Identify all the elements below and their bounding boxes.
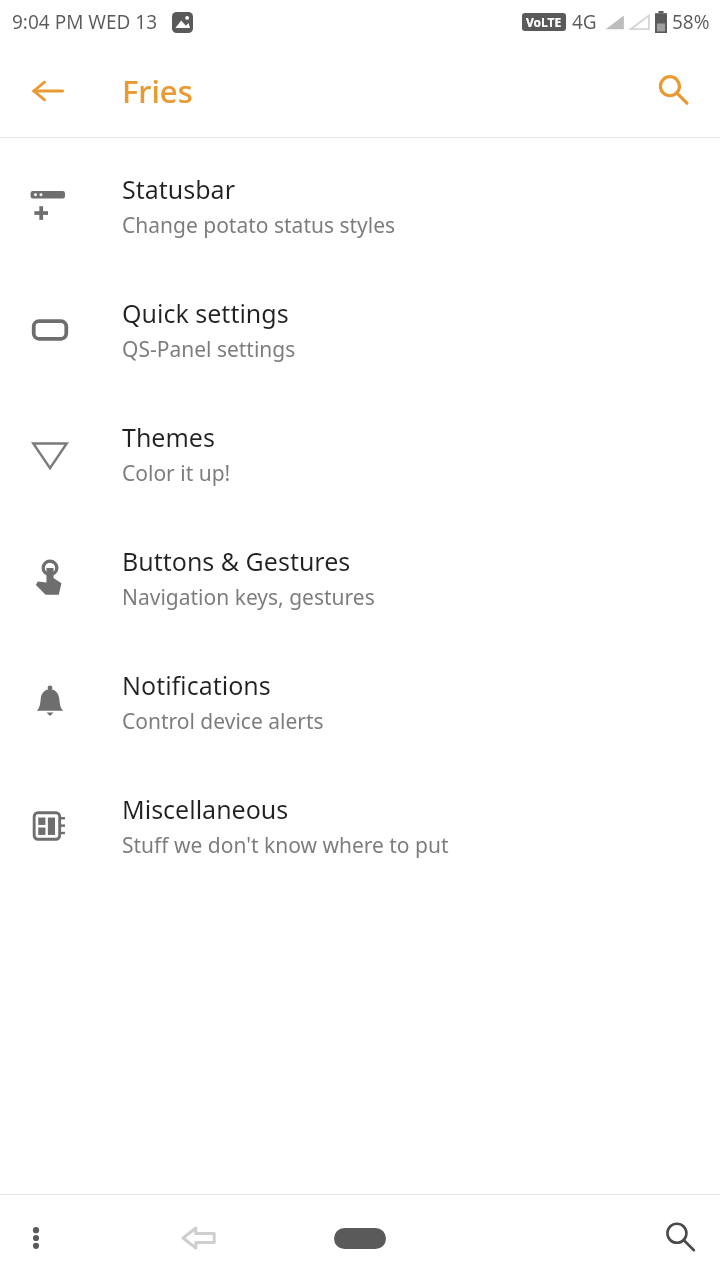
button[interactable]: Quick settings bbox=[0, 268, 720, 392]
staticText: QS-Panel settings bbox=[122, 335, 296, 364]
staticText: Statusbar bbox=[122, 172, 235, 206]
staticText: 9:04 PM WED 13 bbox=[12, 9, 158, 35]
staticText: Notifications bbox=[122, 668, 271, 702]
button[interactable]: Buttons & Gestures bbox=[0, 516, 720, 640]
staticText: Themes bbox=[122, 420, 215, 454]
staticText: Control device alerts bbox=[122, 707, 324, 736]
staticText: Change potato status styles bbox=[122, 211, 396, 240]
button[interactable]: Back bbox=[170, 1209, 228, 1267]
staticText: Miscellaneous bbox=[122, 792, 289, 826]
staticText: VoLTE bbox=[526, 14, 562, 30]
button[interactable]: Statusbar bbox=[0, 144, 720, 268]
button[interactable]: More options bbox=[8, 1210, 64, 1266]
button[interactable]: Back bbox=[16, 59, 80, 123]
staticText: Navigation keys, gestures bbox=[122, 583, 375, 612]
button[interactable]: Home bbox=[321, 1214, 399, 1262]
button[interactable]: Themes bbox=[0, 392, 720, 516]
staticText: Color it up! bbox=[122, 459, 231, 488]
staticText: 4G bbox=[572, 9, 597, 35]
button[interactable]: Search bbox=[652, 1209, 710, 1267]
staticText: Buttons & Gestures bbox=[122, 544, 351, 578]
staticText: Quick settings bbox=[122, 296, 289, 330]
button[interactable]: Search bbox=[642, 59, 706, 123]
staticText: Fries bbox=[122, 70, 193, 112]
staticText: Stuff we don't know where to put bbox=[122, 831, 449, 860]
button[interactable]: Miscellaneous bbox=[0, 764, 720, 888]
staticText: 58% bbox=[672, 9, 710, 35]
button[interactable]: Notifications bbox=[0, 640, 720, 764]
